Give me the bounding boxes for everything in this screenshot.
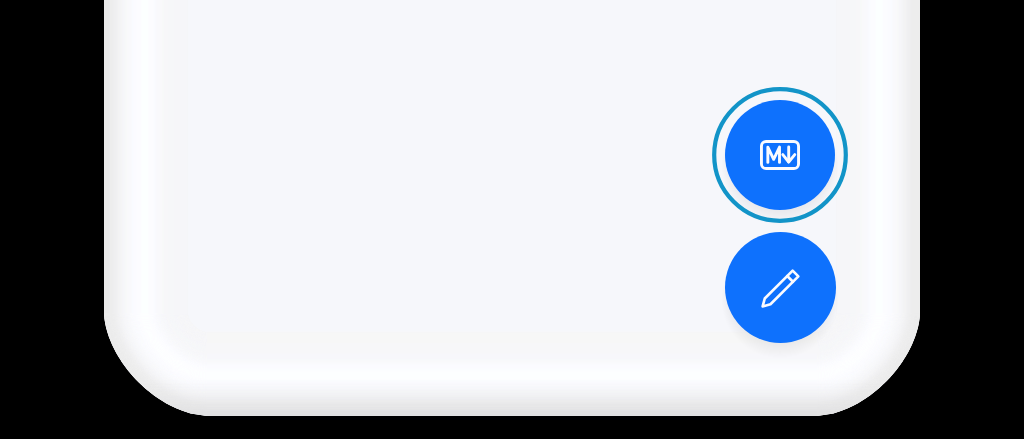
button[interactable]: New note (725, 232, 836, 343)
button[interactable]: Export as Markdown (725, 100, 835, 210)
